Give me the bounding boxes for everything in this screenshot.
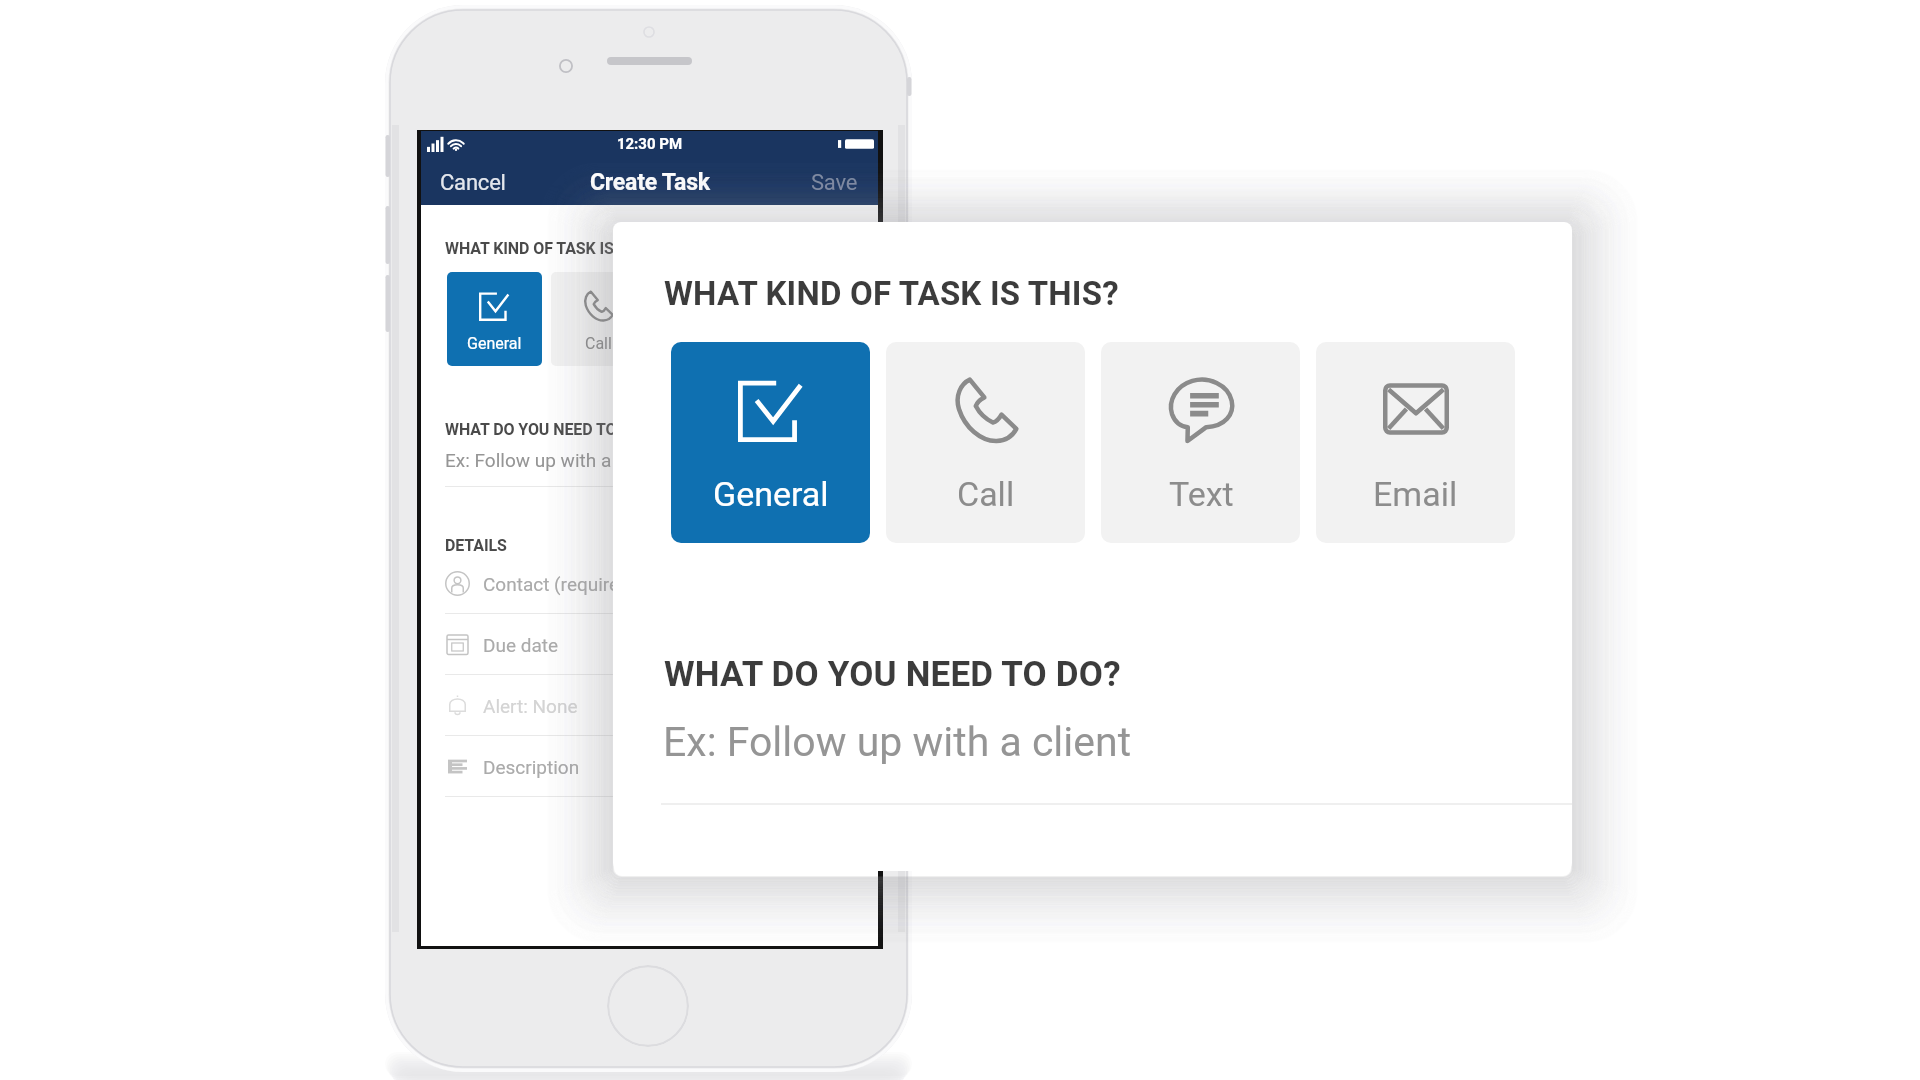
button[interactable]: General [671,342,870,543]
button[interactable]: Email [759,272,854,366]
staticText: WHAT KIND OF TASK IS THIS? [445,239,661,258]
button[interactable]: Save [811,170,858,196]
staticText: General [713,474,829,514]
button[interactable]: Alert: None [443,675,857,736]
staticText: WHAT KIND OF TASK IS THIS? [664,274,1119,313]
staticText: Create Task [590,169,710,196]
button[interactable]: Call [551,272,646,366]
button[interactable]: Call [886,342,1085,543]
button[interactable]: Text [1101,342,1300,543]
staticText: Due date [483,634,559,656]
staticText: General [467,334,522,353]
staticText: Email [1373,474,1458,514]
staticText: Ex: Follow up with a client [445,449,662,471]
button[interactable]: Due date [443,614,857,675]
staticText: Description [483,756,580,778]
staticText: Contact (required) [483,573,637,595]
button[interactable]: Cancel [440,170,506,196]
staticText: Call [957,474,1015,514]
staticText: Text [1169,474,1234,514]
button[interactable]: General [447,272,542,366]
staticText: Call [585,334,612,353]
staticText: DETAILS [445,536,507,555]
staticText: Email [787,334,827,353]
button[interactable]: Home [607,965,689,1047]
staticText: Alert: None [483,695,578,717]
staticText: 12:30 PM [421,135,878,153]
button[interactable]: Email [1316,342,1515,543]
staticText: WHAT DO YOU NEED TO DO? [664,654,1121,695]
staticText: Text [687,334,718,353]
staticText: Ex: Follow up with a client [663,718,1132,766]
button[interactable]: Contact (required) [443,553,857,614]
button[interactable]: Text [655,272,750,366]
button[interactable]: Description [443,736,857,797]
staticText: WHAT DO YOU NEED TO DO? [445,420,650,439]
